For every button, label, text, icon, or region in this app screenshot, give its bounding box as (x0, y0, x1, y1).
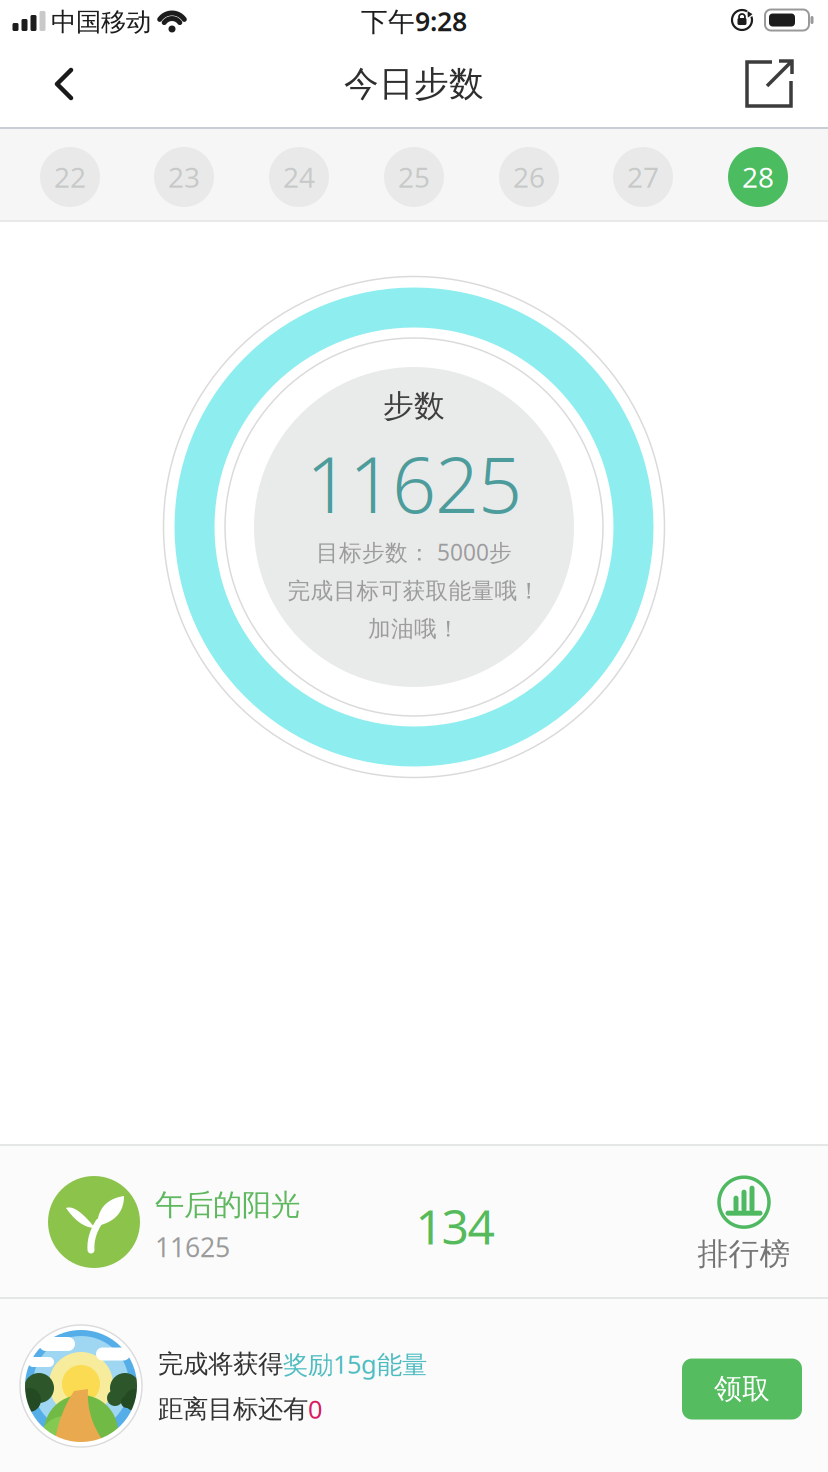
staticText: 27 (627, 158, 659, 196)
staticText: 25 (398, 158, 430, 196)
staticText: 完成目标可获取能量哦！ (287, 577, 540, 605)
staticText: 午后的阳光 (155, 1187, 300, 1223)
staticText: 目标步数： 5000步 (316, 537, 512, 567)
button[interactable]: 28 (728, 147, 788, 207)
staticText: 22 (54, 158, 86, 196)
staticText: 24 (283, 158, 315, 196)
staticText: 中国移动 (51, 6, 151, 37)
button[interactable]: 23 (154, 147, 214, 207)
button[interactable]: 24 (269, 147, 329, 207)
button[interactable]: 排行榜 (697, 1177, 790, 1273)
button[interactable]: 22 (40, 147, 100, 207)
staticText: 11625 (306, 432, 522, 534)
staticText: 0 (308, 1392, 322, 1426)
staticText: 今日步数 (344, 63, 484, 105)
button[interactable]: 26 (499, 147, 559, 207)
staticText: 23 (168, 158, 200, 196)
button[interactable]: 27 (613, 147, 673, 207)
staticText: 完成将获得 (158, 1348, 283, 1379)
staticText: 奖励15g能量 (283, 1347, 427, 1381)
button[interactable] (741, 60, 797, 116)
button[interactable]: 25 (384, 147, 444, 207)
staticText: 28 (742, 158, 774, 196)
staticText: 领取 (714, 1372, 770, 1406)
staticText: 134 (415, 1194, 494, 1258)
button[interactable] (34, 54, 94, 114)
staticText: 步数 (383, 387, 445, 425)
staticText: 距离目标还有 (158, 1393, 308, 1424)
button[interactable]: 领取 (682, 1358, 802, 1419)
staticText: 排行榜 (697, 1235, 790, 1273)
staticText: 11625 (155, 1229, 230, 1265)
staticText: 下午9:28 (361, 3, 467, 39)
staticText: 26 (513, 158, 545, 196)
staticText: 加油哦！ (368, 615, 460, 643)
